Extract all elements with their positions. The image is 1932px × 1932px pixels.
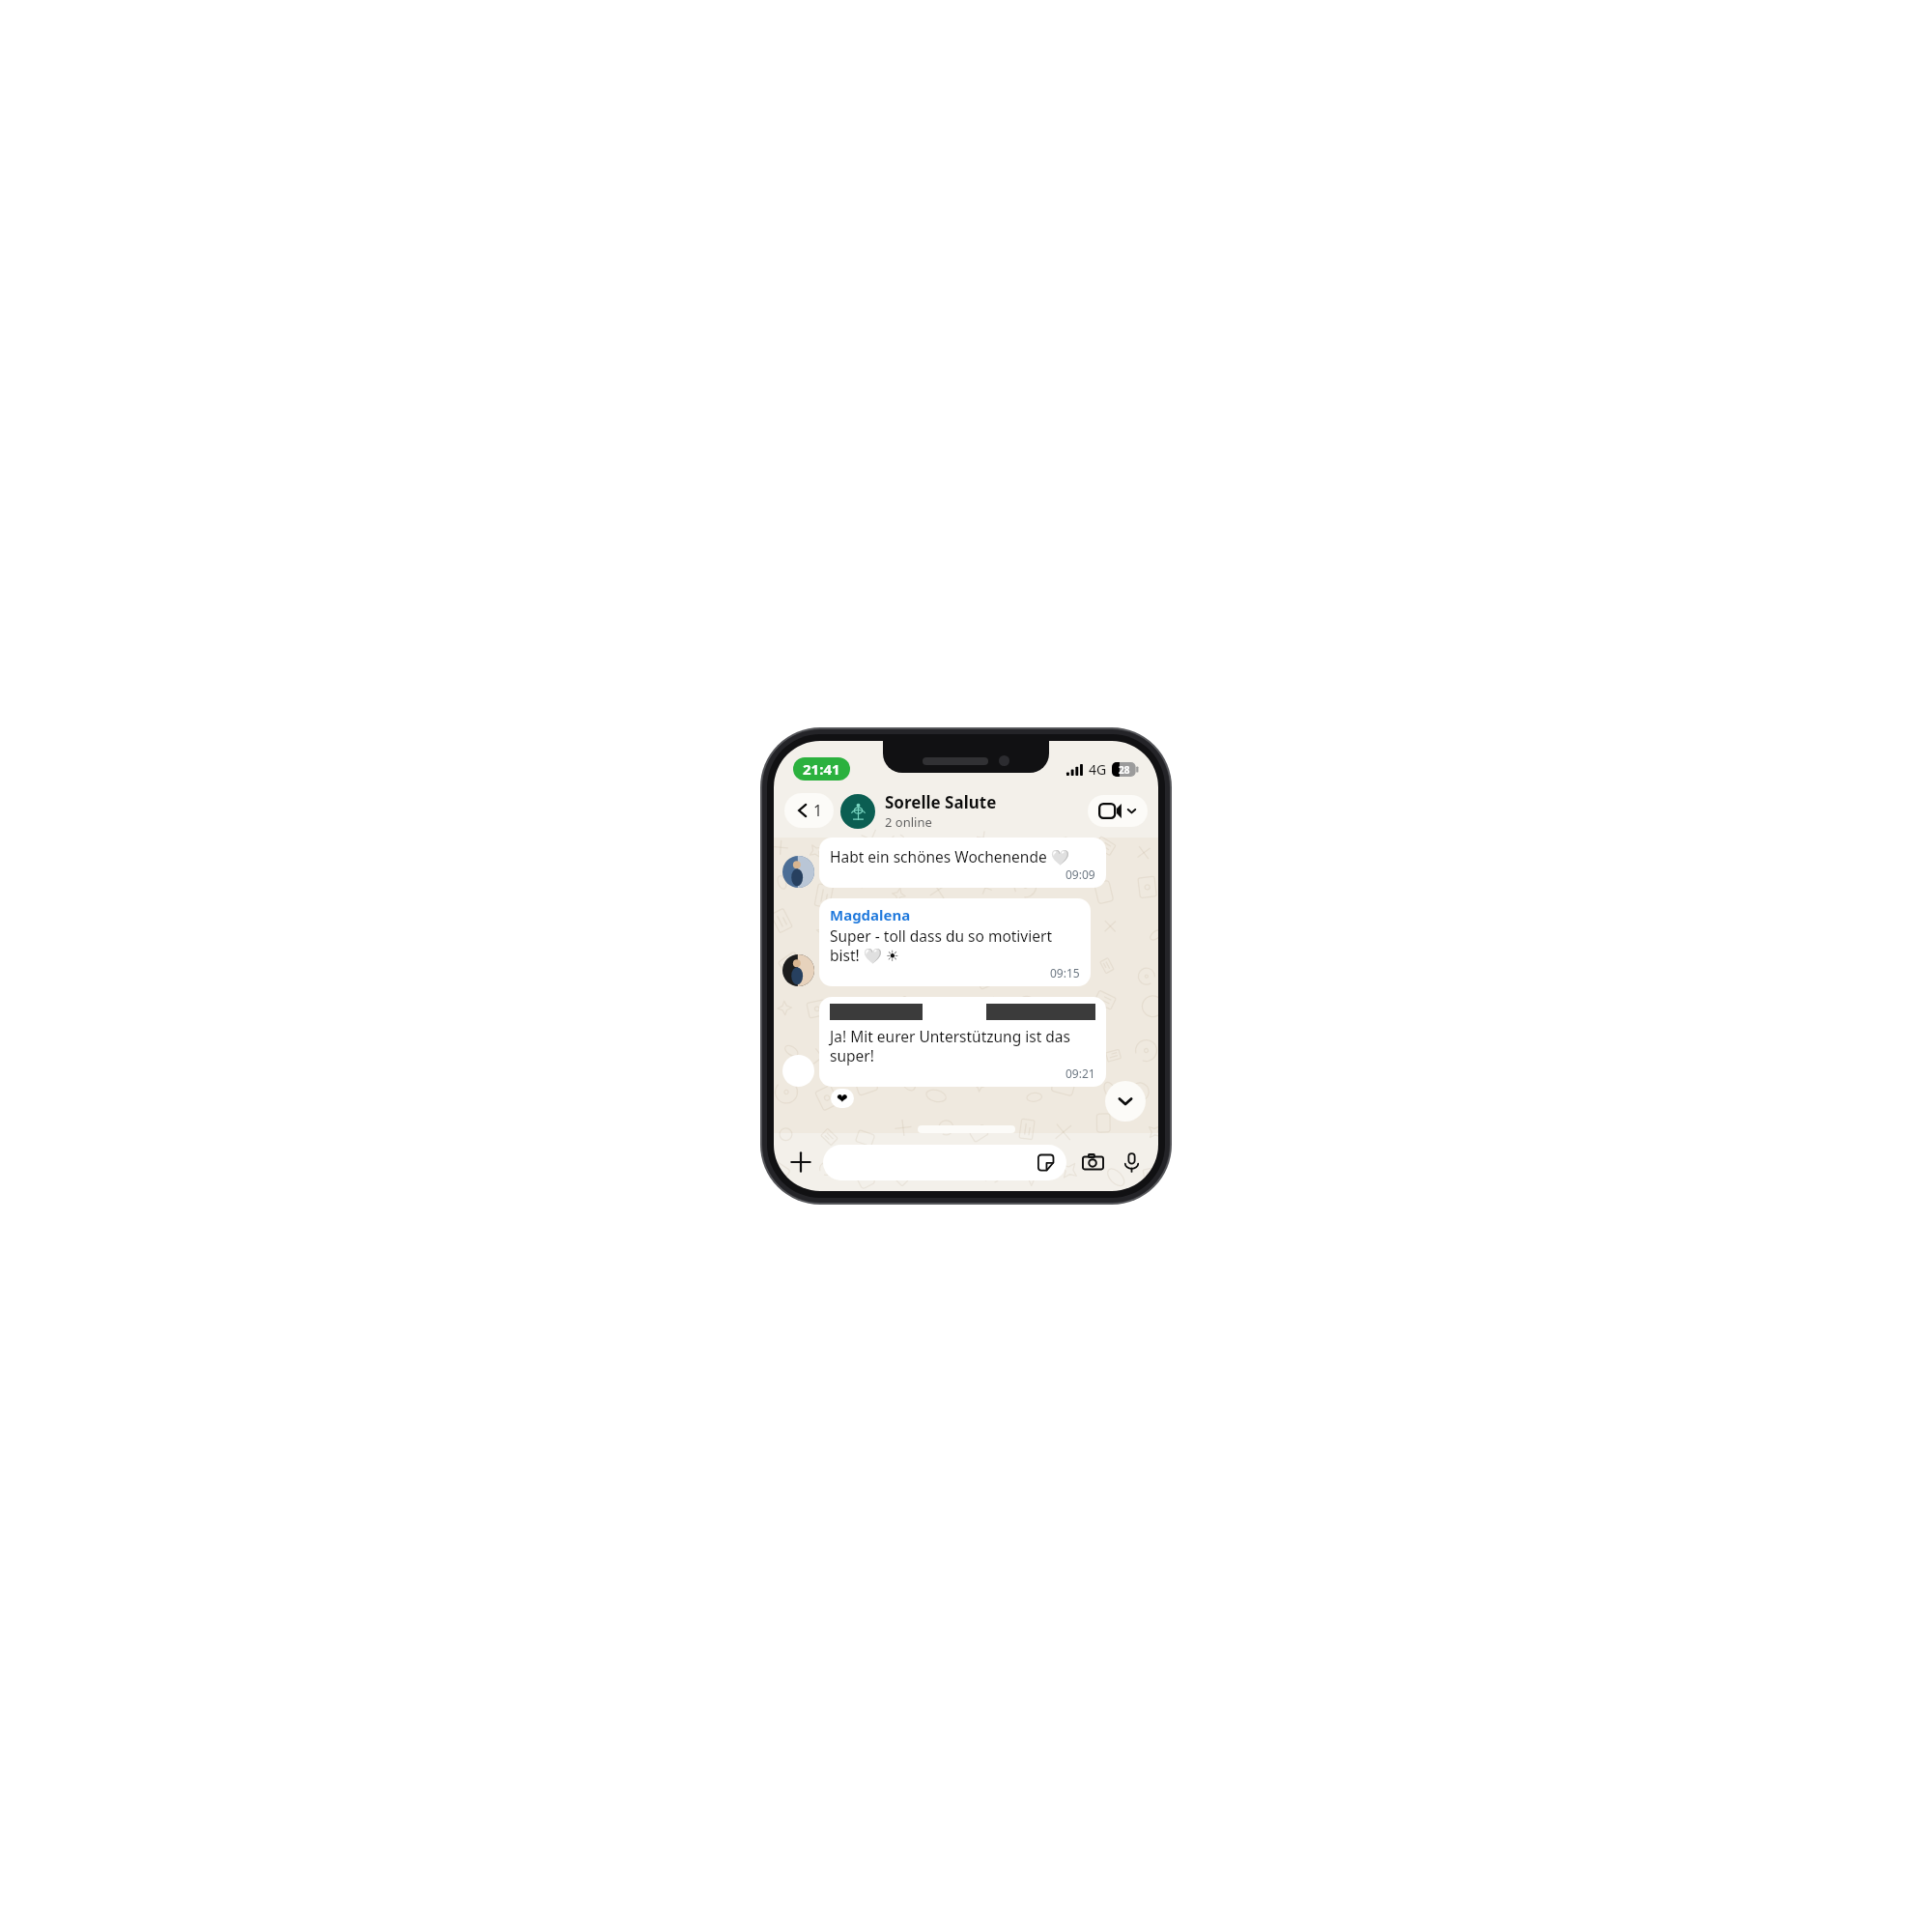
staticText: ❤️ — [837, 1091, 848, 1106]
button[interactable]: Video call — [1088, 795, 1148, 827]
button[interactable]: Sorelle Salute — [840, 791, 1088, 831]
button[interactable]: Attach — [786, 1148, 815, 1177]
staticText: 09:15 — [1050, 965, 1080, 980]
button[interactable]: Magdalena — [819, 898, 1091, 986]
staticText: 09:21 — [1065, 1065, 1095, 1081]
staticText: Sorelle Salute — [885, 791, 997, 813]
button[interactable]: Scroll to bottom — [1105, 1081, 1146, 1122]
button[interactable]: Camera — [1078, 1148, 1107, 1177]
staticText: 4G — [1089, 760, 1107, 779]
staticText: Magdalena — [830, 905, 911, 924]
staticText: 09:09 — [1065, 867, 1095, 882]
staticText: 1 — [813, 800, 823, 821]
staticText: 28 — [1119, 763, 1130, 777]
button[interactable]: Voice message — [1117, 1148, 1146, 1177]
staticText: Habt ein schönes Wochenende 🤍 — [830, 846, 1070, 867]
staticText: Super - toll dass du so motiviert bist! … — [830, 925, 1080, 965]
button[interactable]: Back — [784, 793, 834, 828]
button[interactable]: ❤️ — [831, 1089, 854, 1108]
staticText: 21:41 — [803, 759, 840, 779]
staticText: Ja! Mit eurer Unterstützung ist das supe… — [830, 1026, 1095, 1065]
button[interactable] — [823, 1145, 1066, 1180]
button[interactable]: Habt ein schönes Wochenende 🤍 — [819, 838, 1106, 888]
staticText: 2 online — [885, 813, 932, 831]
button[interactable]: Ja! Mit eurer Unterstützung ist das supe… — [819, 997, 1106, 1087]
